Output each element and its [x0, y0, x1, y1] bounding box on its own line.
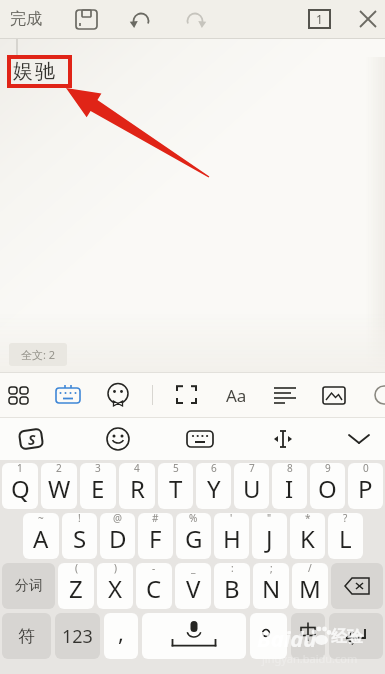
button[interactable]: " [252, 513, 287, 559]
staticText: Y [207, 472, 221, 505]
staticText: ' [230, 513, 233, 525]
button[interactable] [14, 422, 48, 456]
button[interactable]: 123 [55, 613, 100, 659]
button[interactable]: @ [100, 513, 135, 559]
button[interactable]: ~ [23, 513, 59, 559]
button[interactable] [101, 378, 135, 412]
button[interactable]: 8 [272, 463, 307, 509]
button[interactable]: 9 [310, 463, 345, 509]
button[interactable]: : [214, 563, 250, 609]
staticText: - [152, 563, 156, 575]
staticText: C [146, 572, 162, 605]
button[interactable]: , [104, 613, 138, 659]
staticText: B [224, 572, 240, 605]
staticText: E [91, 472, 105, 505]
button[interactable]: 2 [41, 463, 77, 509]
staticText: Aa [226, 384, 247, 407]
staticText: : [231, 563, 234, 575]
staticText: 123 [62, 624, 93, 649]
staticText: J [266, 522, 273, 555]
button[interactable]: 分词 [2, 563, 55, 609]
button[interactable] [250, 613, 287, 659]
button[interactable]: 1 [308, 9, 331, 29]
staticText: _ [191, 563, 196, 575]
button[interactable] [183, 8, 207, 32]
staticText: H [223, 522, 241, 555]
button[interactable] [51, 378, 85, 412]
button[interactable] [2, 378, 36, 412]
button[interactable]: * [290, 513, 325, 559]
staticText: 1 [316, 11, 323, 27]
button[interactable] [317, 378, 351, 412]
staticText: # [152, 513, 159, 525]
staticText: 全文: 2 [21, 347, 56, 362]
staticText: R [130, 472, 145, 505]
staticText: U [243, 472, 261, 505]
staticText: 娱驰 [12, 59, 56, 84]
button[interactable]: 6 [196, 463, 231, 509]
button[interactable]: 3 [80, 463, 116, 509]
staticText: 2 [56, 463, 62, 475]
staticText: Baidu [257, 623, 317, 653]
staticText: 8 [287, 463, 293, 475]
staticText: Q [11, 472, 30, 505]
staticText: D [109, 522, 127, 555]
staticText: 7 [249, 463, 255, 475]
button[interactable]: - [136, 563, 172, 609]
button[interactable]: 0 [348, 463, 383, 509]
button[interactable]: ) [97, 563, 133, 609]
staticText: 5 [173, 463, 179, 475]
staticText: L [339, 522, 352, 555]
button[interactable] [142, 613, 246, 659]
staticText: V [186, 572, 201, 605]
staticText: A [33, 522, 49, 555]
button[interactable] [75, 8, 99, 32]
button[interactable]: 4 [119, 463, 155, 509]
button[interactable]: 完成 [5, 6, 47, 32]
button[interactable]: 7 [234, 463, 269, 509]
staticText: K [300, 522, 315, 555]
staticText: 6 [211, 463, 217, 475]
button[interactable]: ? [328, 513, 363, 559]
staticText: , [118, 617, 124, 647]
button[interactable]: ' [214, 513, 249, 559]
button[interactable] [183, 422, 217, 456]
button[interactable] [343, 422, 377, 456]
button[interactable]: # [138, 513, 173, 559]
staticText: * [305, 513, 311, 525]
button[interactable]: _ [175, 563, 211, 609]
staticText: jingyan.baidu.com [262, 651, 358, 666]
staticText: W [48, 472, 71, 505]
button[interactable] [367, 378, 385, 412]
button[interactable] [129, 8, 153, 32]
staticText: N [262, 572, 281, 605]
staticText: @ [113, 513, 122, 525]
button[interactable] [268, 378, 302, 412]
button[interactable] [357, 8, 379, 30]
button[interactable]: % [176, 513, 211, 559]
button[interactable] [170, 378, 204, 412]
button[interactable]: ( [58, 563, 94, 609]
button[interactable] [291, 613, 325, 659]
button[interactable] [329, 613, 383, 659]
staticText: ? [343, 513, 348, 525]
button[interactable]: 1 [2, 463, 38, 509]
button[interactable]: 符 [2, 613, 51, 659]
staticText: 符 [18, 626, 35, 647]
button[interactable]: 5 [158, 463, 193, 509]
staticText: ; [270, 563, 273, 575]
button[interactable]: Aa [220, 382, 252, 408]
button[interactable] [101, 422, 135, 456]
staticText: O [318, 472, 337, 505]
button[interactable]: / [292, 563, 328, 609]
staticText: % [189, 513, 198, 525]
staticText: X [108, 572, 123, 605]
staticText: ~ [38, 513, 44, 525]
button[interactable]: ! [62, 513, 97, 559]
staticText: M [299, 572, 321, 605]
button[interactable] [331, 563, 383, 609]
button[interactable] [266, 422, 300, 456]
button[interactable]: ; [253, 563, 289, 609]
staticText: 0 [363, 463, 369, 475]
staticText: 经验 [331, 627, 363, 647]
